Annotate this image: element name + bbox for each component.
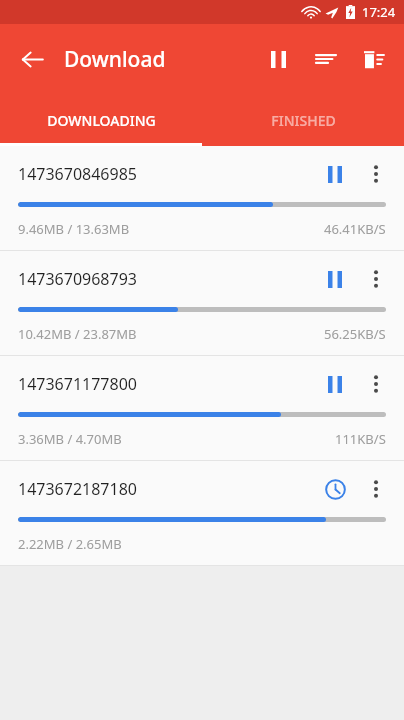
- button[interactable]: Pause: [314, 258, 356, 300]
- button[interactable]: More options: [356, 259, 396, 299]
- button[interactable]: Sort: [302, 35, 350, 83]
- staticText: Download: [64, 45, 166, 74]
- button[interactable]: 1473672187180: [0, 461, 404, 565]
- button[interactable]: More options: [356, 364, 396, 404]
- staticText: 1473671177800: [18, 373, 137, 395]
- staticText: 17:24: [362, 3, 396, 21]
- button[interactable]: Waiting: [314, 468, 356, 510]
- button[interactable]: More options: [356, 154, 396, 194]
- button[interactable]: Pause: [314, 153, 356, 195]
- staticText: 10.42MB / 23.87MB: [18, 325, 137, 343]
- button[interactable]: Pause all: [254, 35, 302, 83]
- button[interactable]: More options: [356, 469, 396, 509]
- staticText: 46.41KB/S: [324, 220, 386, 238]
- staticText: 1473670968793: [18, 268, 137, 290]
- button[interactable]: Pause: [314, 363, 356, 405]
- staticText: 111KB/S: [335, 430, 386, 448]
- staticText: 2.22MB / 2.65MB: [18, 535, 122, 553]
- button[interactable]: 1473671177800: [0, 356, 404, 460]
- button[interactable]: Back: [10, 37, 54, 81]
- staticText: DOWNLOADING: [47, 111, 156, 130]
- button[interactable]: Delete: [350, 35, 398, 83]
- button[interactable]: FINISHED: [202, 94, 404, 146]
- button[interactable]: 1473670968793: [0, 251, 404, 355]
- staticText: 1473670846985: [18, 163, 137, 185]
- button[interactable]: 1473670846985: [0, 146, 404, 250]
- staticText: 3.36MB / 4.70MB: [18, 430, 122, 448]
- button[interactable]: DOWNLOADING: [0, 94, 202, 146]
- staticText: 9.46MB / 13.63MB: [18, 220, 130, 238]
- staticText: 56.25KB/S: [324, 325, 386, 343]
- staticText: 1473672187180: [18, 478, 137, 500]
- staticText: FINISHED: [271, 111, 336, 130]
